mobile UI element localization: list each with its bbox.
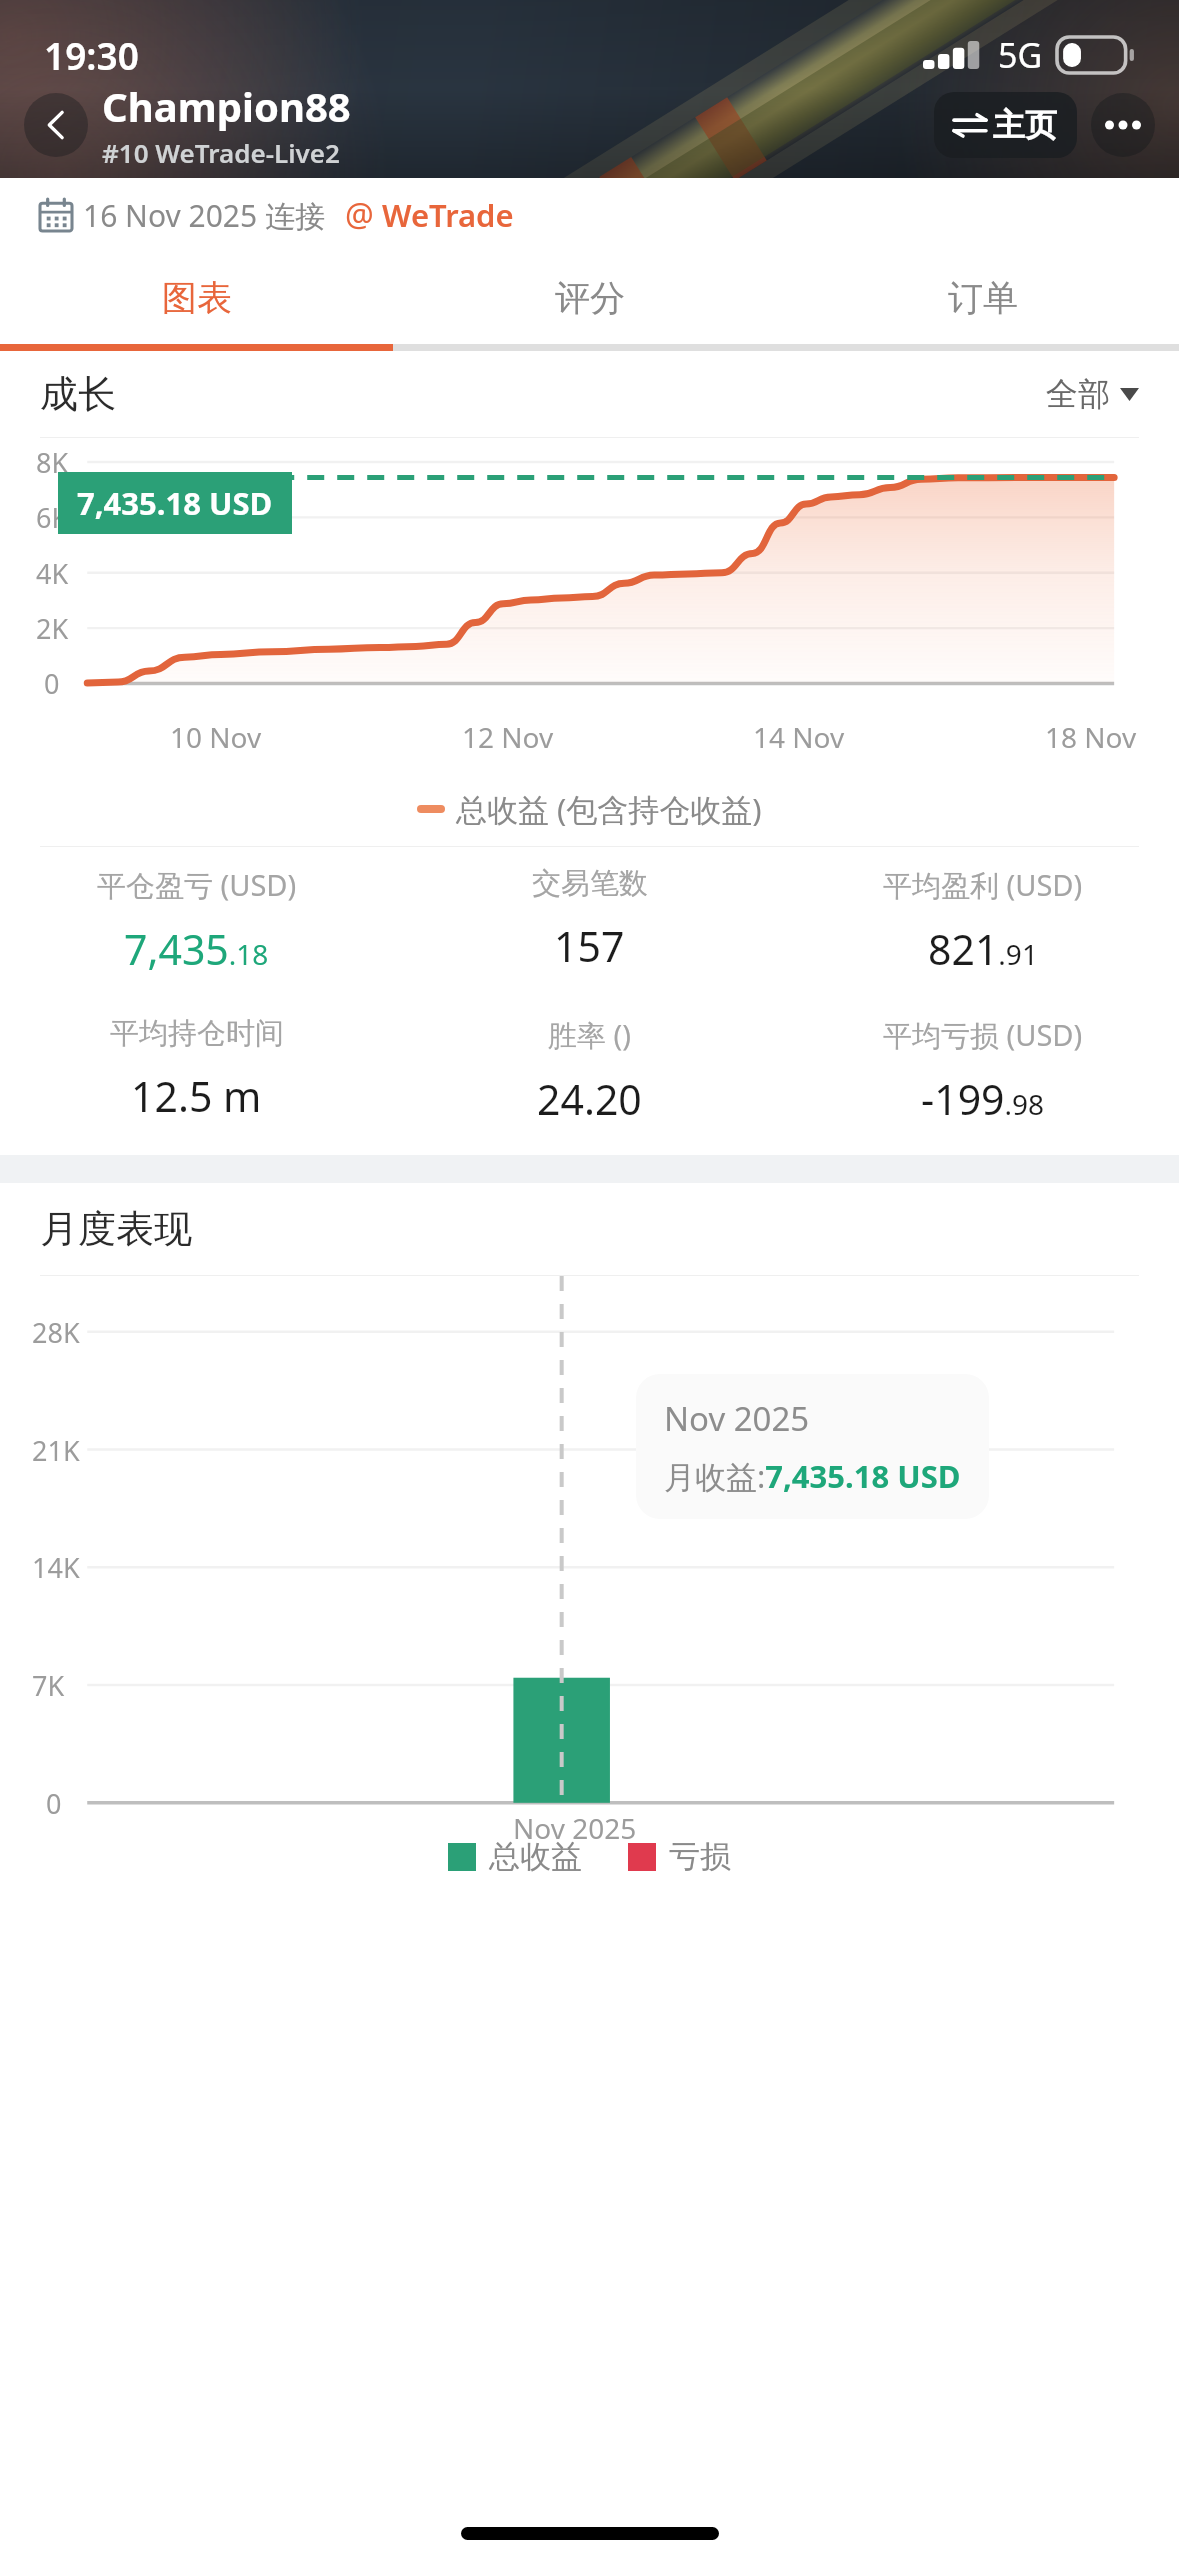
staticText: Nov 2025: [664, 1396, 810, 1441]
button[interactable]: More options: [1091, 93, 1155, 157]
staticText: 订单: [948, 276, 1018, 320]
staticText: 7K: [32, 1667, 65, 1704]
staticText: -199.98: [921, 1071, 1045, 1127]
staticText: 2K: [36, 610, 69, 647]
staticText: 21K: [32, 1432, 80, 1469]
staticText: 4K: [36, 555, 69, 592]
staticText: 总收益 (包含持仓收益): [456, 788, 762, 830]
button[interactable]: Back: [24, 93, 88, 157]
staticText: 28K: [32, 1314, 80, 1351]
button[interactable]: 图表: [0, 252, 393, 344]
staticText: 成长: [40, 370, 116, 418]
staticText: 0: [44, 665, 60, 702]
button[interactable]: 全部: [1046, 374, 1139, 414]
staticText: 8K: [36, 444, 69, 481]
staticText: 平均亏损 (USD): [883, 1015, 1083, 1055]
staticText: 胜率 (): [548, 1015, 631, 1055]
staticText: 0: [46, 1785, 62, 1822]
staticText: 平均持仓时间: [110, 1015, 284, 1052]
staticText: 评分: [555, 276, 625, 320]
staticText: 12.5 m: [131, 1068, 262, 1124]
staticText: 月收益:7,435.18 USD: [664, 1455, 961, 1497]
staticText: 月度表现: [40, 1205, 192, 1253]
staticText: 主页: [993, 105, 1057, 145]
staticText: 24.20: [537, 1071, 642, 1127]
staticText: WeTrade: [382, 194, 514, 236]
button[interactable]: Nov 2025: [636, 1374, 989, 1519]
staticText: 19:30: [44, 30, 139, 80]
staticText: Champion88: [102, 79, 351, 133]
staticText: 14K: [32, 1549, 80, 1586]
staticText: #10 WeTrade-Live2: [102, 135, 340, 170]
staticText: 图表: [162, 276, 232, 320]
staticText: 16 Nov 2025 连接: [83, 195, 325, 236]
staticText: 亏损: [669, 1837, 731, 1876]
staticText: 157: [554, 918, 625, 974]
staticText: 全部: [1046, 374, 1110, 414]
staticText: 平仓盈亏 (USD): [97, 865, 297, 905]
staticText: 总收益: [489, 1837, 582, 1876]
staticText: 6K: [36, 499, 69, 536]
button[interactable]: @: [345, 193, 514, 237]
staticText: 10 Nov: [170, 718, 262, 756]
staticText: 18 Nov: [1045, 718, 1137, 756]
staticText: 7,435.18 USD: [77, 482, 273, 524]
staticText: 12 Nov: [462, 718, 554, 756]
staticText: 交易笔数: [532, 865, 648, 902]
staticText: 7,435.18: [124, 921, 269, 977]
button[interactable]: 主页: [934, 92, 1077, 158]
staticText: @: [345, 193, 374, 237]
staticText: Nov 2025: [513, 1809, 637, 1847]
staticText: 5G: [998, 32, 1043, 78]
staticText: 821.91: [928, 921, 1038, 977]
staticText: 平均盈利 (USD): [883, 865, 1083, 905]
staticText: 14 Nov: [753, 718, 845, 756]
button[interactable]: 订单: [786, 252, 1179, 344]
button[interactable]: 评分: [393, 252, 786, 344]
